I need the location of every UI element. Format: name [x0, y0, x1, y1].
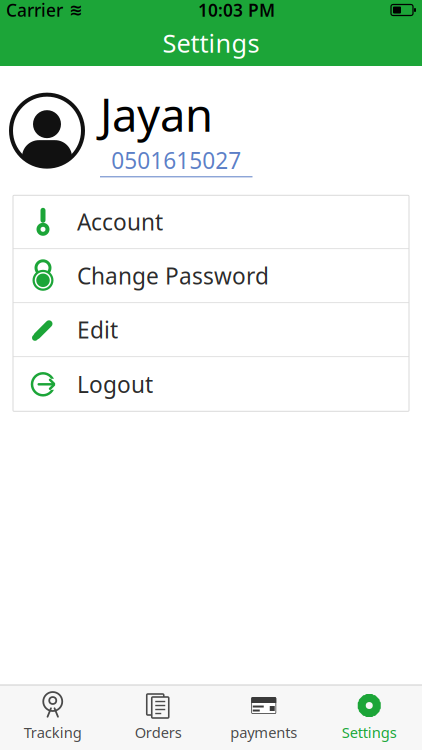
staticText: Carrier: [6, 0, 63, 21]
button[interactable]: Orders: [105, 685, 211, 750]
button[interactable]: payments: [211, 685, 316, 750]
staticText: Logout: [77, 369, 153, 399]
button[interactable]: Account: [13, 195, 409, 249]
staticText: Settings: [162, 26, 259, 60]
staticText: Change Password: [77, 261, 269, 291]
staticText: Tracking: [24, 722, 82, 742]
staticText: 0501615027: [111, 145, 241, 175]
staticText: Settings: [342, 722, 397, 742]
button[interactable]: Change Password: [13, 249, 409, 303]
staticText: 10:03 PM: [198, 0, 275, 21]
staticText: Orders: [135, 722, 182, 742]
staticText: Account: [77, 207, 163, 237]
button[interactable]: Settings: [316, 685, 422, 750]
button[interactable]: 0501615027: [100, 145, 252, 177]
staticText: payments: [230, 722, 297, 742]
button[interactable]: Edit: [13, 303, 409, 357]
button[interactable]: Logout: [13, 357, 409, 411]
button[interactable]: Tracking: [0, 685, 105, 750]
staticText: ≋: [63, 1, 82, 19]
staticText: Jayan: [100, 84, 213, 144]
staticText: Edit: [77, 315, 118, 345]
